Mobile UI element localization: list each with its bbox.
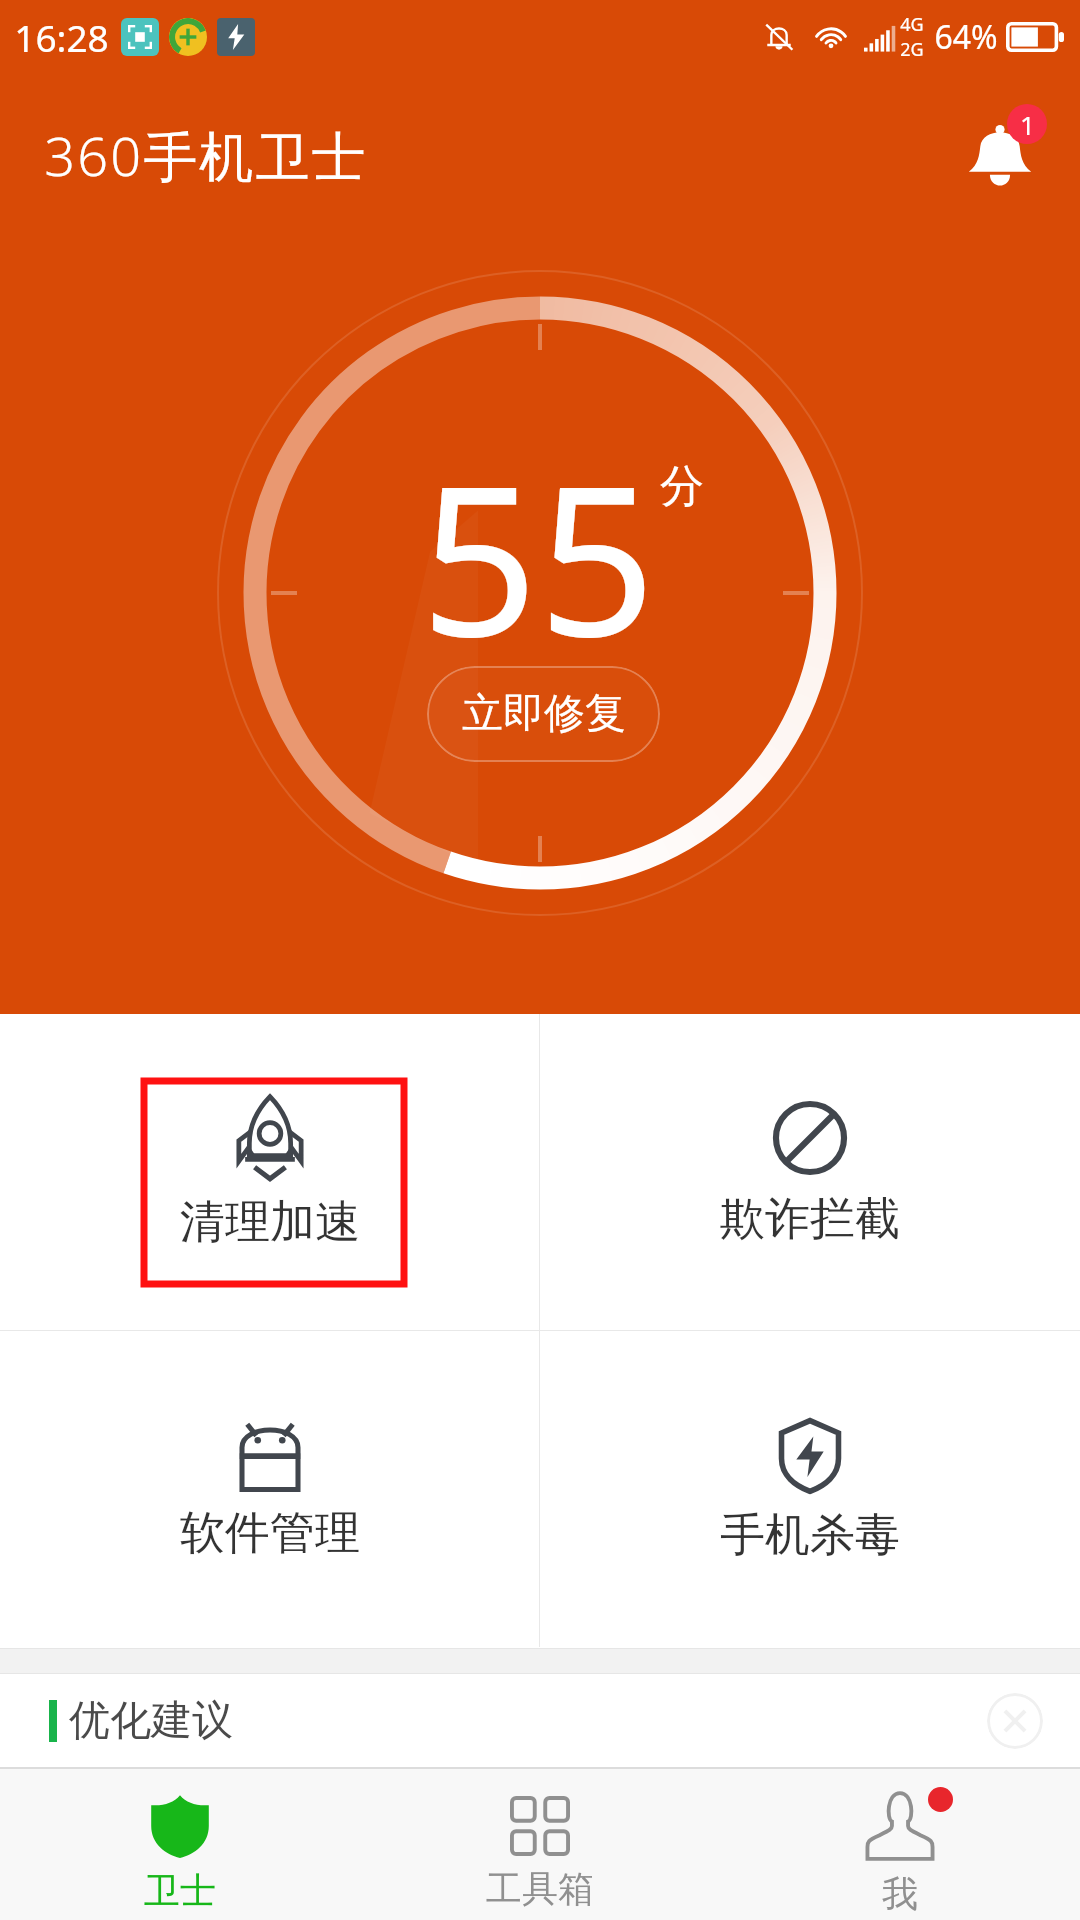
staticText: 软件管理 <box>180 1505 360 1562</box>
staticText: 立即修复 <box>462 688 626 740</box>
staticText: 分 <box>660 459 704 514</box>
staticText: 优化建议 <box>69 1695 233 1747</box>
staticText: 1 <box>1020 107 1035 142</box>
button[interactable]: 工具箱 <box>360 1769 720 1920</box>
staticText: 卫士 <box>144 1868 216 1913</box>
button[interactable]: 清理加速 <box>0 1014 539 1330</box>
button[interactable]: 立即修复 <box>427 666 660 762</box>
staticText: 64% <box>934 15 998 59</box>
staticText: 4G <box>900 12 924 37</box>
button[interactable]: 欺诈拦截 <box>540 1014 1080 1330</box>
staticText: 清理加速 <box>180 1194 360 1251</box>
button[interactable]: Notifications <box>952 107 1048 203</box>
staticText: 我 <box>882 1871 918 1916</box>
staticText: 2G <box>900 37 924 62</box>
button[interactable]: 手机杀毒 <box>540 1331 1080 1647</box>
button[interactable]: 我 <box>720 1769 1080 1920</box>
button[interactable]: Close <box>987 1693 1043 1749</box>
button[interactable]: 软件管理 <box>0 1331 539 1647</box>
staticText: 55 <box>420 416 656 697</box>
staticText: 手机杀毒 <box>720 1507 900 1564</box>
staticText: 16:28 <box>14 12 109 62</box>
staticText: 欺诈拦截 <box>720 1191 900 1248</box>
staticText: 360手机卫士 <box>44 118 368 192</box>
button[interactable]: 卫士 <box>0 1769 360 1920</box>
staticText: 工具箱 <box>486 1866 594 1911</box>
